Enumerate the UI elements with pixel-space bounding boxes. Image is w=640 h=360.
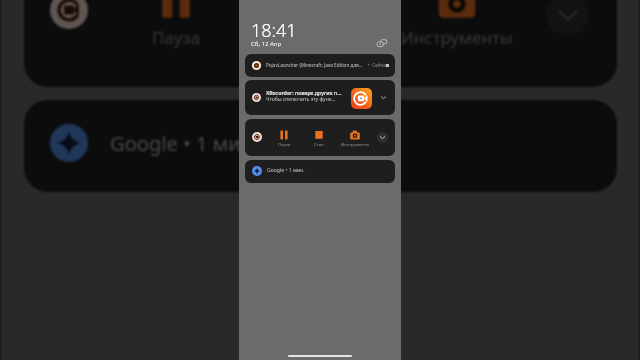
staticText: XRecorder: поверх других п… [266, 89, 342, 96]
button[interactable]: Стоп [299, 128, 339, 147]
staticText: Google • 1 мин. [267, 167, 305, 174]
staticText: Стоп [314, 141, 324, 147]
button[interactable]: Пауза [264, 128, 304, 147]
staticText: PojavLauncher (Minecraft: Java Edition д… [266, 62, 363, 68]
button[interactable]: Пауза [97, 0, 255, 51]
button[interactable]: Пауза [245, 119, 395, 156]
staticText: Инструменты [401, 26, 513, 49]
staticText: Чтобы отключить эту функ… [266, 96, 336, 103]
button[interactable]: Инструменты [378, 0, 536, 51]
staticText: 18:41 [251, 18, 297, 43]
staticText: Инструменты [341, 141, 370, 147]
button[interactable]: XRecorder: поверх других п… [245, 80, 395, 115]
button[interactable]: Стоп [239, 0, 397, 51]
button[interactable]: Expand notification [378, 92, 389, 103]
staticText: • Сейчас [368, 62, 389, 68]
staticText: Пауза [278, 141, 291, 147]
button[interactable]: Notification history [372, 33, 389, 50]
staticText: Google • 1 мин. [110, 129, 259, 156]
button[interactable]: PojavLauncher (Minecraft: Java Edition д… [245, 54, 395, 77]
button[interactable]: Google • 1 мин. [245, 160, 395, 183]
button[interactable]: Google • 1 мин. [24, 100, 617, 192]
button[interactable]: Collapse notification [377, 132, 388, 143]
staticText: Сб, 12 Апр [251, 40, 282, 48]
button[interactable]: Collapse notification [546, 0, 589, 36]
staticText: Пауза [152, 26, 201, 49]
button[interactable]: Инструменты [335, 128, 375, 147]
button[interactable]: Пауза [24, 0, 617, 87]
